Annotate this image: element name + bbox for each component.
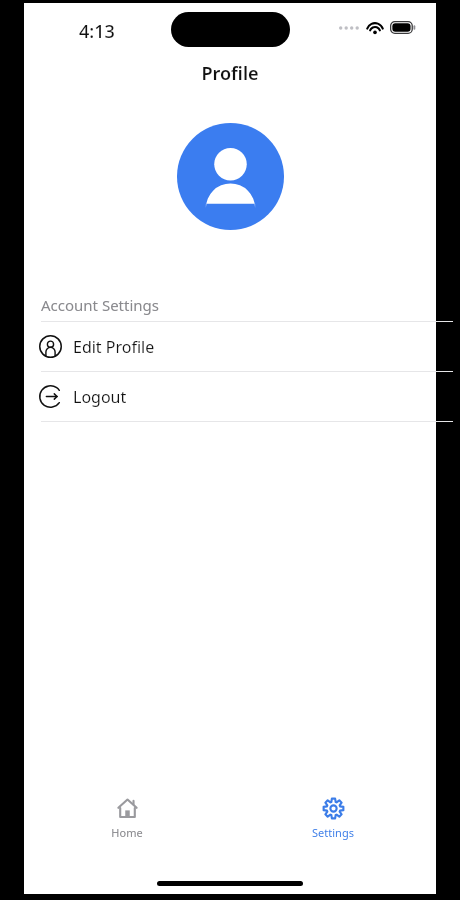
button[interactable]: Home	[81, 792, 173, 844]
button[interactable]: Settings	[287, 792, 379, 844]
staticText: Logout	[73, 386, 127, 408]
staticText: Account Settings	[41, 295, 159, 315]
button[interactable]: Profile picture	[177, 123, 284, 230]
button[interactable]: Logout	[24, 372, 436, 421]
staticText: Home	[111, 825, 143, 840]
staticText: Edit Profile	[73, 336, 155, 358]
staticText: Profile	[201, 61, 259, 86]
button[interactable]: Edit Profile	[24, 322, 436, 371]
staticText: 4:13	[79, 19, 115, 44]
staticText: Settings	[312, 825, 354, 840]
